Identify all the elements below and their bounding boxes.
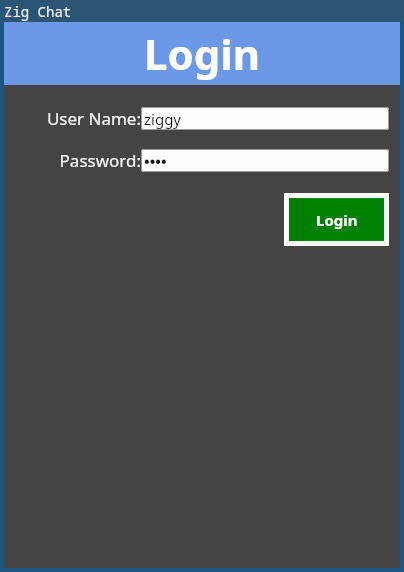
staticText: ziggy	[144, 109, 182, 129]
staticText: Zig Chat	[4, 2, 72, 21]
button[interactable]: ziggy	[141, 107, 389, 130]
button[interactable]: Login	[284, 193, 389, 246]
staticText: Login	[316, 210, 358, 230]
staticText: User Name:	[46, 107, 141, 130]
staticText: Login	[144, 25, 261, 82]
button[interactable]: ••••	[141, 149, 389, 172]
staticText: ••••	[144, 151, 167, 171]
staticText: Password:	[59, 149, 141, 172]
